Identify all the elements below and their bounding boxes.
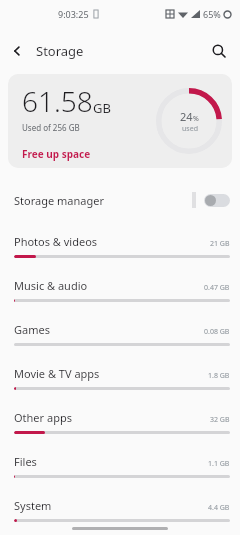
staticText: 9:03:25: [58, 8, 89, 20]
button[interactable]: Movie & TV apps: [0, 356, 240, 390]
staticText: 24: [180, 109, 193, 124]
button[interactable]: Storage manager toggle: [204, 194, 230, 207]
staticText: Other apps: [14, 410, 72, 425]
button[interactable]: Games: [0, 312, 240, 346]
staticText: Used of 256 GB: [22, 122, 80, 133]
button[interactable]: Files: [0, 444, 240, 478]
staticText: System: [14, 498, 52, 513]
staticText: 1.1 GB: [208, 459, 230, 469]
staticText: Storage manager: [14, 193, 104, 208]
staticText: Files: [14, 454, 37, 469]
staticText: %: [193, 114, 199, 124]
staticText: used: [182, 124, 198, 134]
button[interactable]: Photos & videos: [0, 224, 240, 258]
staticText: Music & audio: [14, 278, 88, 293]
staticText: 61.58: [22, 82, 93, 120]
staticText: Games: [14, 322, 50, 337]
button[interactable]: System: [0, 488, 240, 522]
staticText: 32 GB: [210, 415, 230, 425]
button[interactable]: 61.58: [8, 74, 232, 168]
staticText: 21 GB: [210, 239, 230, 249]
button[interactable]: Storage manager: [0, 182, 240, 218]
button[interactable]: Search: [202, 34, 236, 68]
staticText: 0.08 GB: [204, 327, 230, 337]
button[interactable]: Free up space: [22, 147, 91, 161]
staticText: 4.4 GB: [208, 503, 230, 513]
button[interactable]: Music & audio: [0, 268, 240, 302]
staticText: Free up space: [22, 147, 91, 161]
staticText: 0.47 GB: [204, 283, 230, 293]
staticText: 1.8 GB: [208, 371, 230, 381]
staticText: Storage: [36, 42, 84, 60]
staticText: GB: [93, 99, 111, 117]
button[interactable]: Back: [0, 34, 34, 68]
staticText: Photos & videos: [14, 234, 98, 249]
button[interactable]: Other apps: [0, 400, 240, 434]
staticText: 65%: [203, 8, 221, 20]
staticText: Movie & TV apps: [14, 366, 100, 381]
